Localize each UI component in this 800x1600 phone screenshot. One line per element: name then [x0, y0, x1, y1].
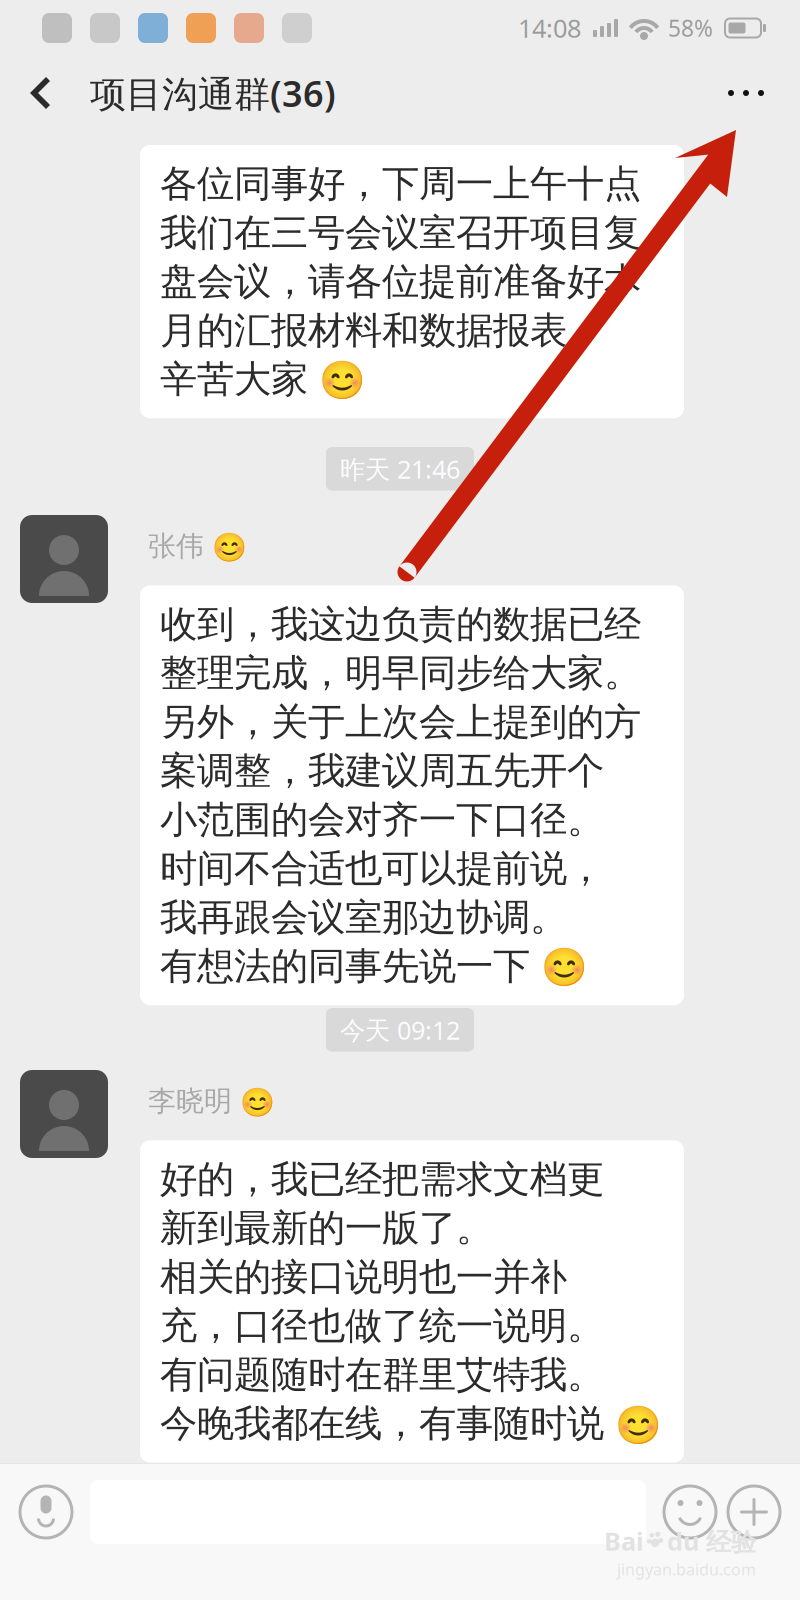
button[interactable]: More — [722, 1480, 786, 1544]
button[interactable]: Sender avatar — [20, 515, 108, 603]
button[interactable]: Voice message — [14, 1480, 78, 1544]
staticText: du 经验 — [667, 1524, 756, 1558]
staticText: 收到，我这边负责的数据已经 整理完成，明早同步给大家。 另外，关于上次会上提到的… — [160, 601, 641, 989]
staticText: 14:08 — [518, 11, 581, 45]
staticText: 昨天 21:46 — [340, 452, 460, 486]
staticText: 好的，我已经把需求文档更 新到最新的一版了。 相关的接口说明也一并补 充，口径也… — [160, 1156, 661, 1446]
button[interactable]: Emoji — [658, 1480, 722, 1544]
staticText: 项目沟通群(36) — [90, 69, 336, 117]
staticText: 58% — [668, 13, 713, 43]
staticText: jingyan.baidu.com — [617, 1559, 756, 1580]
staticText: Bai — [604, 1524, 644, 1558]
staticText: 各位同事好，下周一上午十点 我们在三号会议室召开项目复 盘会议，请各位提前准备好… — [160, 161, 641, 402]
staticText: 李晓明 😊 — [148, 1084, 275, 1118]
button[interactable]: Back — [0, 52, 68, 126]
button[interactable]: More — [728, 60, 788, 126]
button[interactable]: Sender avatar — [20, 1070, 108, 1158]
staticText: 今天 09:12 — [340, 1013, 460, 1047]
staticText: 张伟 😊 — [148, 529, 247, 563]
